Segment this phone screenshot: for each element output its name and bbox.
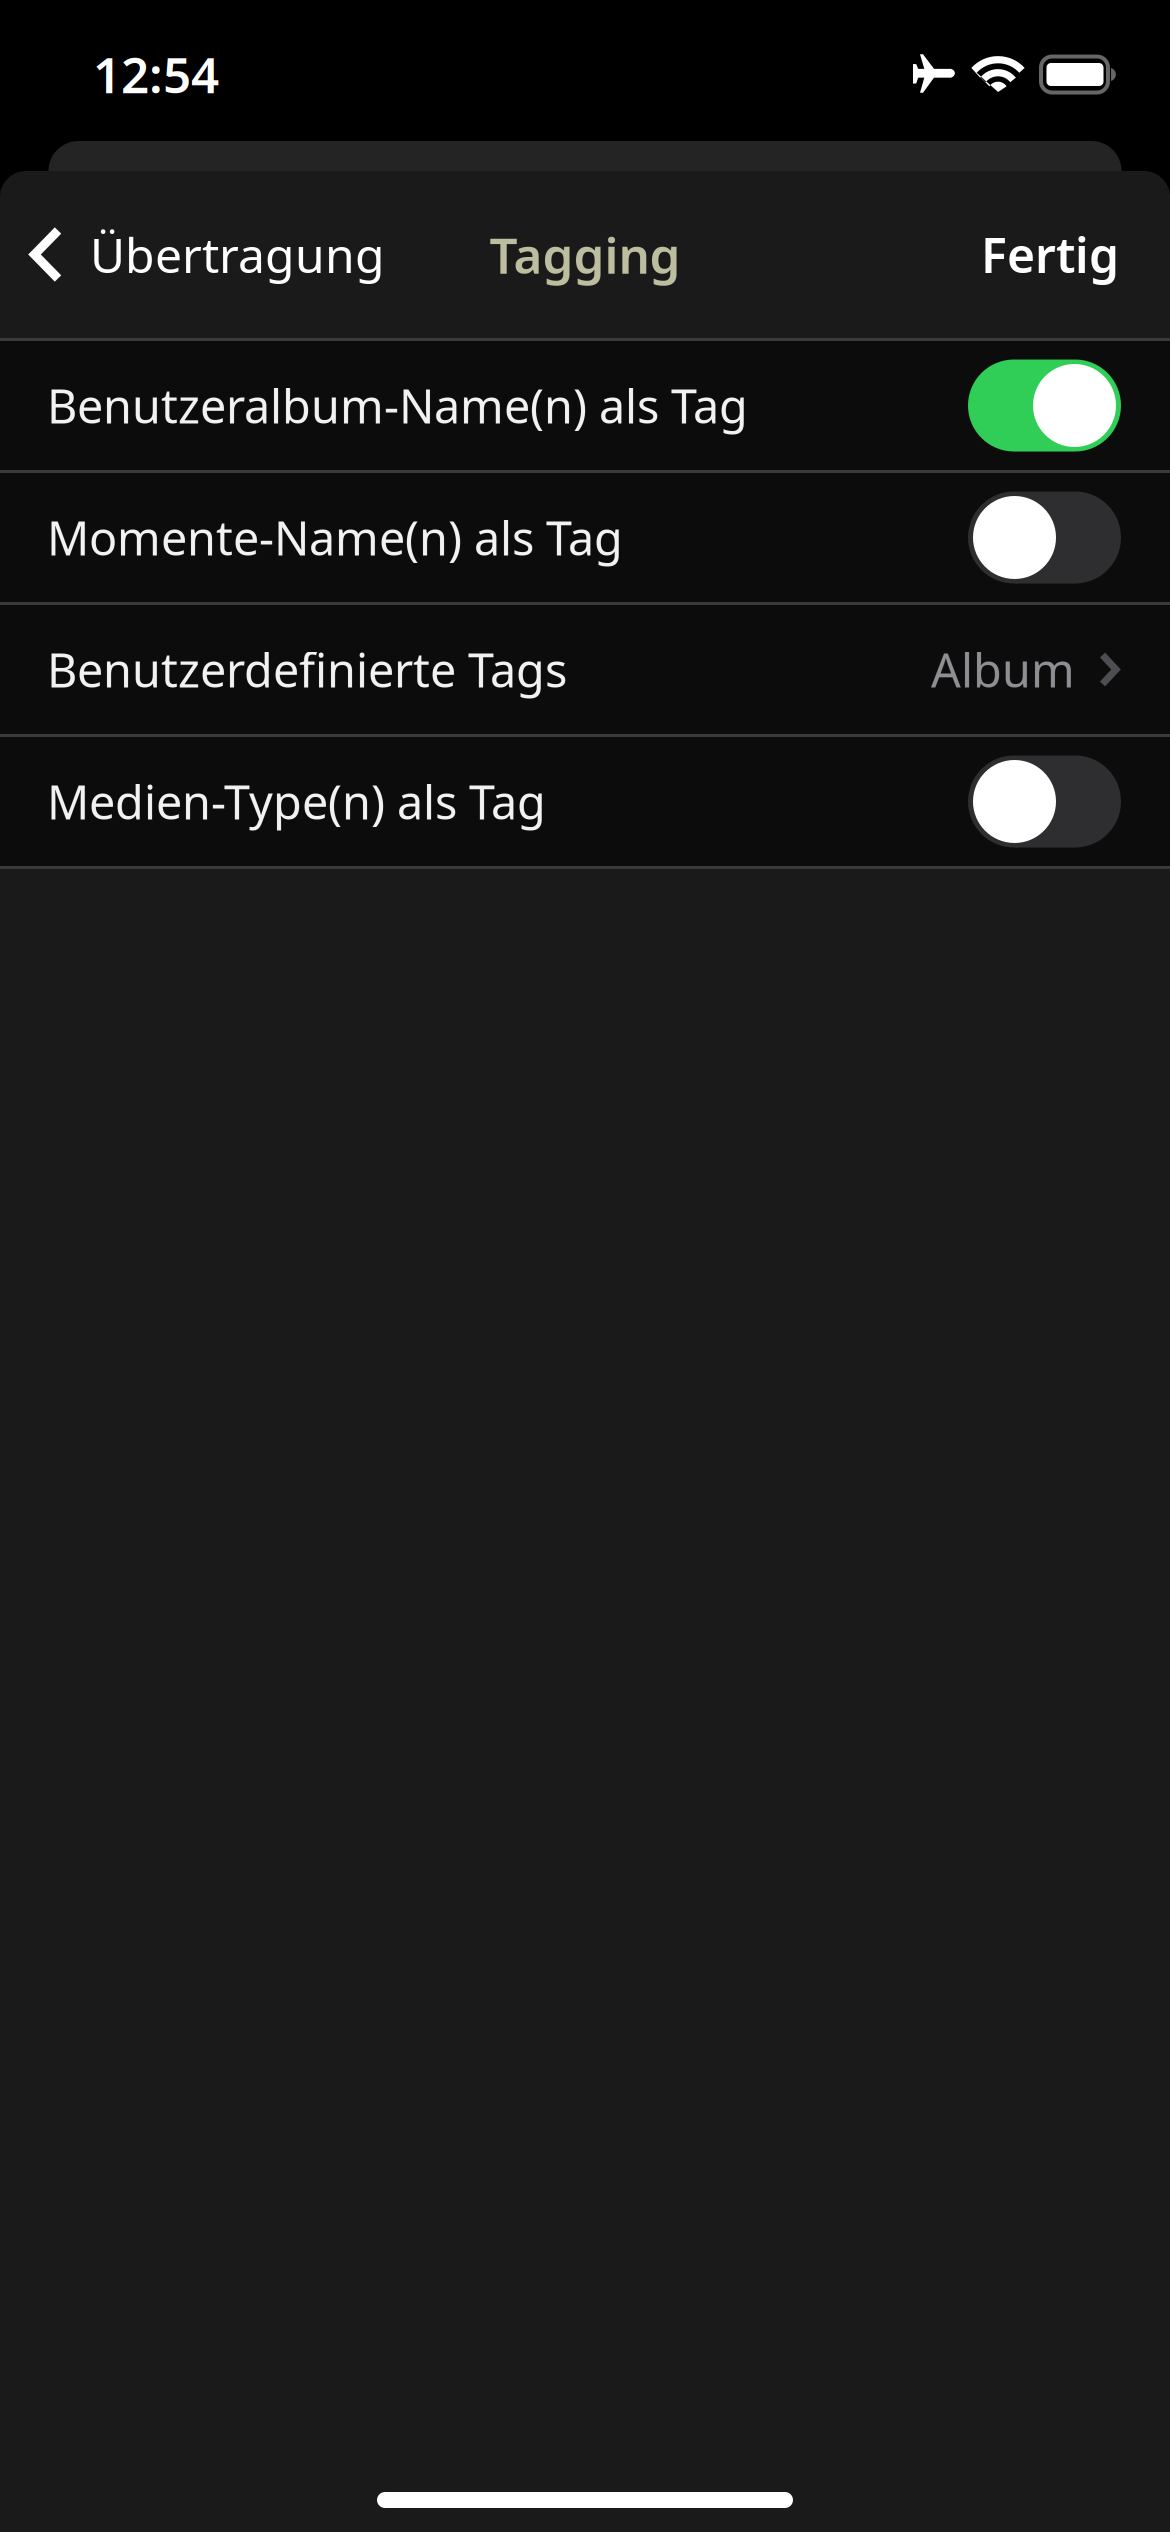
button[interactable]: Benutzeralbum-Name(n) als Tag [0,341,1170,470]
button[interactable]: Momente-Name(n) als Tag [0,473,1170,602]
button[interactable]: Benutzerdefinierte Tags [0,605,1170,734]
staticText: Momente-Name(n) als Tag [47,506,623,568]
staticText: Benutzeralbum-Name(n) als Tag [47,374,748,436]
button[interactable]: Fertig [955,171,1170,338]
staticText: Fertig [981,223,1119,286]
staticText: 12:54 [93,41,219,107]
staticText: Album [931,638,1075,700]
button[interactable]: Medien-Type(n) als Tag [0,737,1170,866]
staticText: Tagging [489,222,680,287]
button[interactable]: Übertragung [0,171,407,338]
staticText: Medien-Type(n) als Tag [47,770,546,832]
staticText: Benutzerdefinierte Tags [47,638,567,700]
staticText: Übertragung [90,223,385,286]
